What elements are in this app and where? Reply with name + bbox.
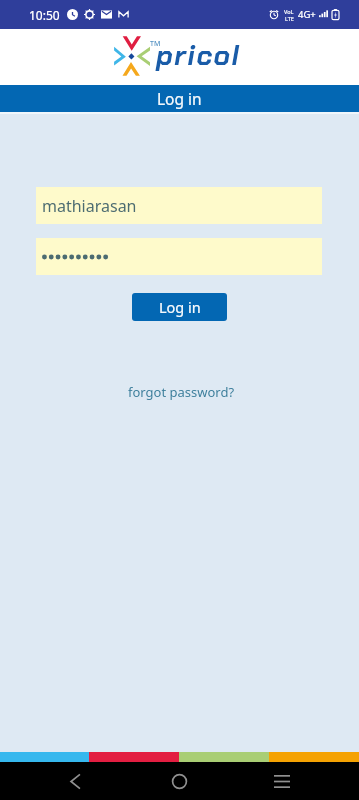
button[interactable]: Back <box>51 762 99 800</box>
staticText: TM <box>150 39 161 49</box>
button[interactable]: Recent apps <box>258 762 306 800</box>
staticText: VoL <box>284 8 294 15</box>
staticText: LTE <box>285 15 294 22</box>
button[interactable]: forgot password? <box>120 380 243 404</box>
staticText: 10:50 <box>29 7 60 23</box>
button[interactable]: mathiarasan <box>36 187 322 224</box>
staticText: pricol <box>156 37 241 73</box>
staticText: 4G+ <box>298 8 316 21</box>
button[interactable] <box>36 238 322 275</box>
button[interactable]: Log in <box>132 293 227 321</box>
staticText: mathiarasan <box>42 195 137 217</box>
staticText: forgot password? <box>128 383 235 401</box>
staticText: Log in <box>157 88 202 109</box>
staticText: Log in <box>159 297 201 317</box>
button[interactable]: Home <box>155 762 203 800</box>
